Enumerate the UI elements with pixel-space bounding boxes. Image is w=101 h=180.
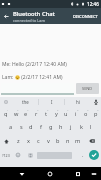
staticText: a	[9, 123, 13, 131]
button[interactable]: More suggestions	[0, 97, 12, 106]
staticText: u	[64, 110, 68, 118]
button[interactable]: Emoji	[12, 148, 23, 162]
button[interactable]: hi	[65, 97, 90, 106]
button[interactable]: 5	[41, 106, 51, 120]
staticText: the	[22, 99, 29, 105]
button[interactable]: Navigate up	[0, 8, 13, 24]
staticText: 9	[87, 108, 89, 111]
staticText: 7	[67, 108, 69, 111]
staticText: f	[40, 123, 42, 131]
button[interactable]: 1	[0, 106, 11, 120]
staticText: Lam:	[2, 74, 15, 81]
button[interactable]: Recent apps	[68, 167, 88, 180]
staticText: e	[24, 110, 28, 118]
staticText: o	[84, 110, 88, 118]
button[interactable]: v	[43, 134, 53, 148]
button[interactable]: f	[36, 120, 46, 134]
staticText: h	[59, 123, 63, 131]
staticText: d	[29, 123, 33, 131]
button[interactable]: n	[63, 134, 73, 148]
staticText: I	[51, 99, 53, 105]
button[interactable]: k	[76, 120, 86, 134]
button[interactable]: 6	[51, 106, 61, 120]
button[interactable]: j	[66, 120, 76, 134]
staticText: s	[20, 123, 23, 131]
staticText: Bluetooth Chat	[13, 10, 55, 18]
staticText: p	[94, 110, 98, 118]
button[interactable]: Switch keyboard	[87, 167, 101, 180]
staticText: hi	[76, 99, 80, 105]
staticText: j	[70, 123, 72, 131]
staticText: v	[47, 137, 50, 145]
button[interactable]: m	[73, 134, 83, 148]
staticText: 12:46	[87, 1, 99, 7]
staticText: k	[80, 123, 83, 131]
staticText: l	[90, 123, 92, 131]
staticText: x	[27, 137, 30, 145]
staticText: r	[35, 110, 38, 118]
button[interactable]: b	[53, 134, 63, 148]
button[interactable]: Shift	[0, 134, 13, 148]
button[interactable]: Send	[88, 148, 99, 162]
staticText: 0	[97, 108, 99, 111]
button[interactable]: s	[16, 120, 26, 134]
staticText: .	[82, 151, 84, 159]
button[interactable]: d	[26, 120, 36, 134]
button[interactable]	[1, 83, 74, 95]
button[interactable]: 7	[61, 106, 71, 120]
button[interactable]: ?123	[0, 148, 12, 162]
staticText: 8	[77, 108, 79, 111]
button[interactable]: c	[33, 134, 43, 148]
staticText: n	[66, 137, 70, 145]
button[interactable]: .	[77, 148, 88, 162]
button[interactable]: 8	[71, 106, 81, 120]
button[interactable]: the	[12, 97, 38, 106]
button[interactable]: 9	[81, 106, 91, 120]
staticText: z	[17, 137, 20, 145]
staticText: 6	[57, 108, 59, 111]
button[interactable]: 0	[91, 106, 101, 120]
staticText: (2/2/17 12:41 AM)	[20, 74, 63, 81]
staticText: Me: Hello (2/2/17 12:40 AM)	[2, 61, 67, 68]
button[interactable]: h	[56, 120, 66, 134]
staticText: 2	[17, 108, 19, 111]
staticText: ?123	[2, 153, 10, 158]
staticText: 4	[37, 108, 39, 111]
staticText: connected to Lam	[13, 18, 45, 23]
button[interactable]: Voice input	[90, 97, 101, 106]
staticText: i	[75, 110, 77, 118]
staticText: t	[45, 110, 48, 118]
staticText: b	[56, 137, 60, 145]
button[interactable]: SEND	[76, 83, 99, 94]
button[interactable]: Back	[12, 167, 32, 180]
button[interactable]: Home	[40, 167, 60, 180]
staticText: w	[14, 110, 19, 118]
staticText: m	[75, 137, 81, 145]
button[interactable]: a	[6, 120, 16, 134]
button[interactable]: Change language	[25, 148, 36, 162]
staticText: SEND	[82, 86, 93, 91]
button[interactable]: z	[13, 134, 23, 148]
staticText: 5	[47, 108, 49, 111]
staticText: y	[55, 110, 58, 118]
button[interactable]: I	[39, 97, 64, 106]
button[interactable]: Backspace	[83, 134, 101, 148]
button[interactable]: 3	[21, 106, 31, 120]
staticText: g	[49, 123, 53, 131]
staticText: 1	[7, 108, 9, 111]
staticText: DISCONNECT	[73, 14, 98, 19]
button[interactable]: 2	[11, 106, 21, 120]
button[interactable]: x	[23, 134, 33, 148]
staticText: c	[37, 137, 40, 145]
button[interactable]: g	[46, 120, 56, 134]
button[interactable]: l	[86, 120, 96, 134]
staticText: 3	[27, 108, 29, 111]
staticText: q	[4, 110, 8, 118]
button[interactable]: DISCONNECT	[73, 14, 98, 19]
button[interactable]: 4	[31, 106, 41, 120]
